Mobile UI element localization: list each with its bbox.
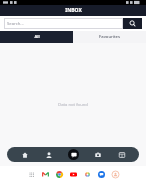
button[interactable]: Messages — [97, 170, 106, 179]
button[interactable]: Chrome — [55, 170, 64, 179]
button[interactable]: Search — [123, 18, 142, 29]
staticText: INBOX — [65, 7, 82, 14]
button[interactable]: All apps — [27, 170, 36, 179]
button[interactable]: Grid — [115, 148, 128, 161]
staticText: Search... — [7, 21, 24, 27]
staticText: Favourites — [99, 34, 120, 40]
button[interactable]: Contacts — [111, 170, 120, 179]
button[interactable]: Photos — [83, 170, 92, 179]
button[interactable]: All — [0, 31, 73, 43]
button[interactable]: Camera — [91, 148, 104, 161]
button[interactable]: Profile — [42, 148, 55, 161]
button[interactable]: YouTube — [69, 170, 78, 179]
button[interactable]: Home — [18, 148, 31, 161]
button[interactable]: Favourites — [73, 31, 146, 43]
staticText: Data not found — [58, 102, 88, 108]
button[interactable]: Search... — [4, 18, 123, 29]
button[interactable]: Messages — [67, 148, 80, 161]
button[interactable]: Gmail — [41, 170, 50, 179]
staticText: All — [34, 34, 40, 40]
